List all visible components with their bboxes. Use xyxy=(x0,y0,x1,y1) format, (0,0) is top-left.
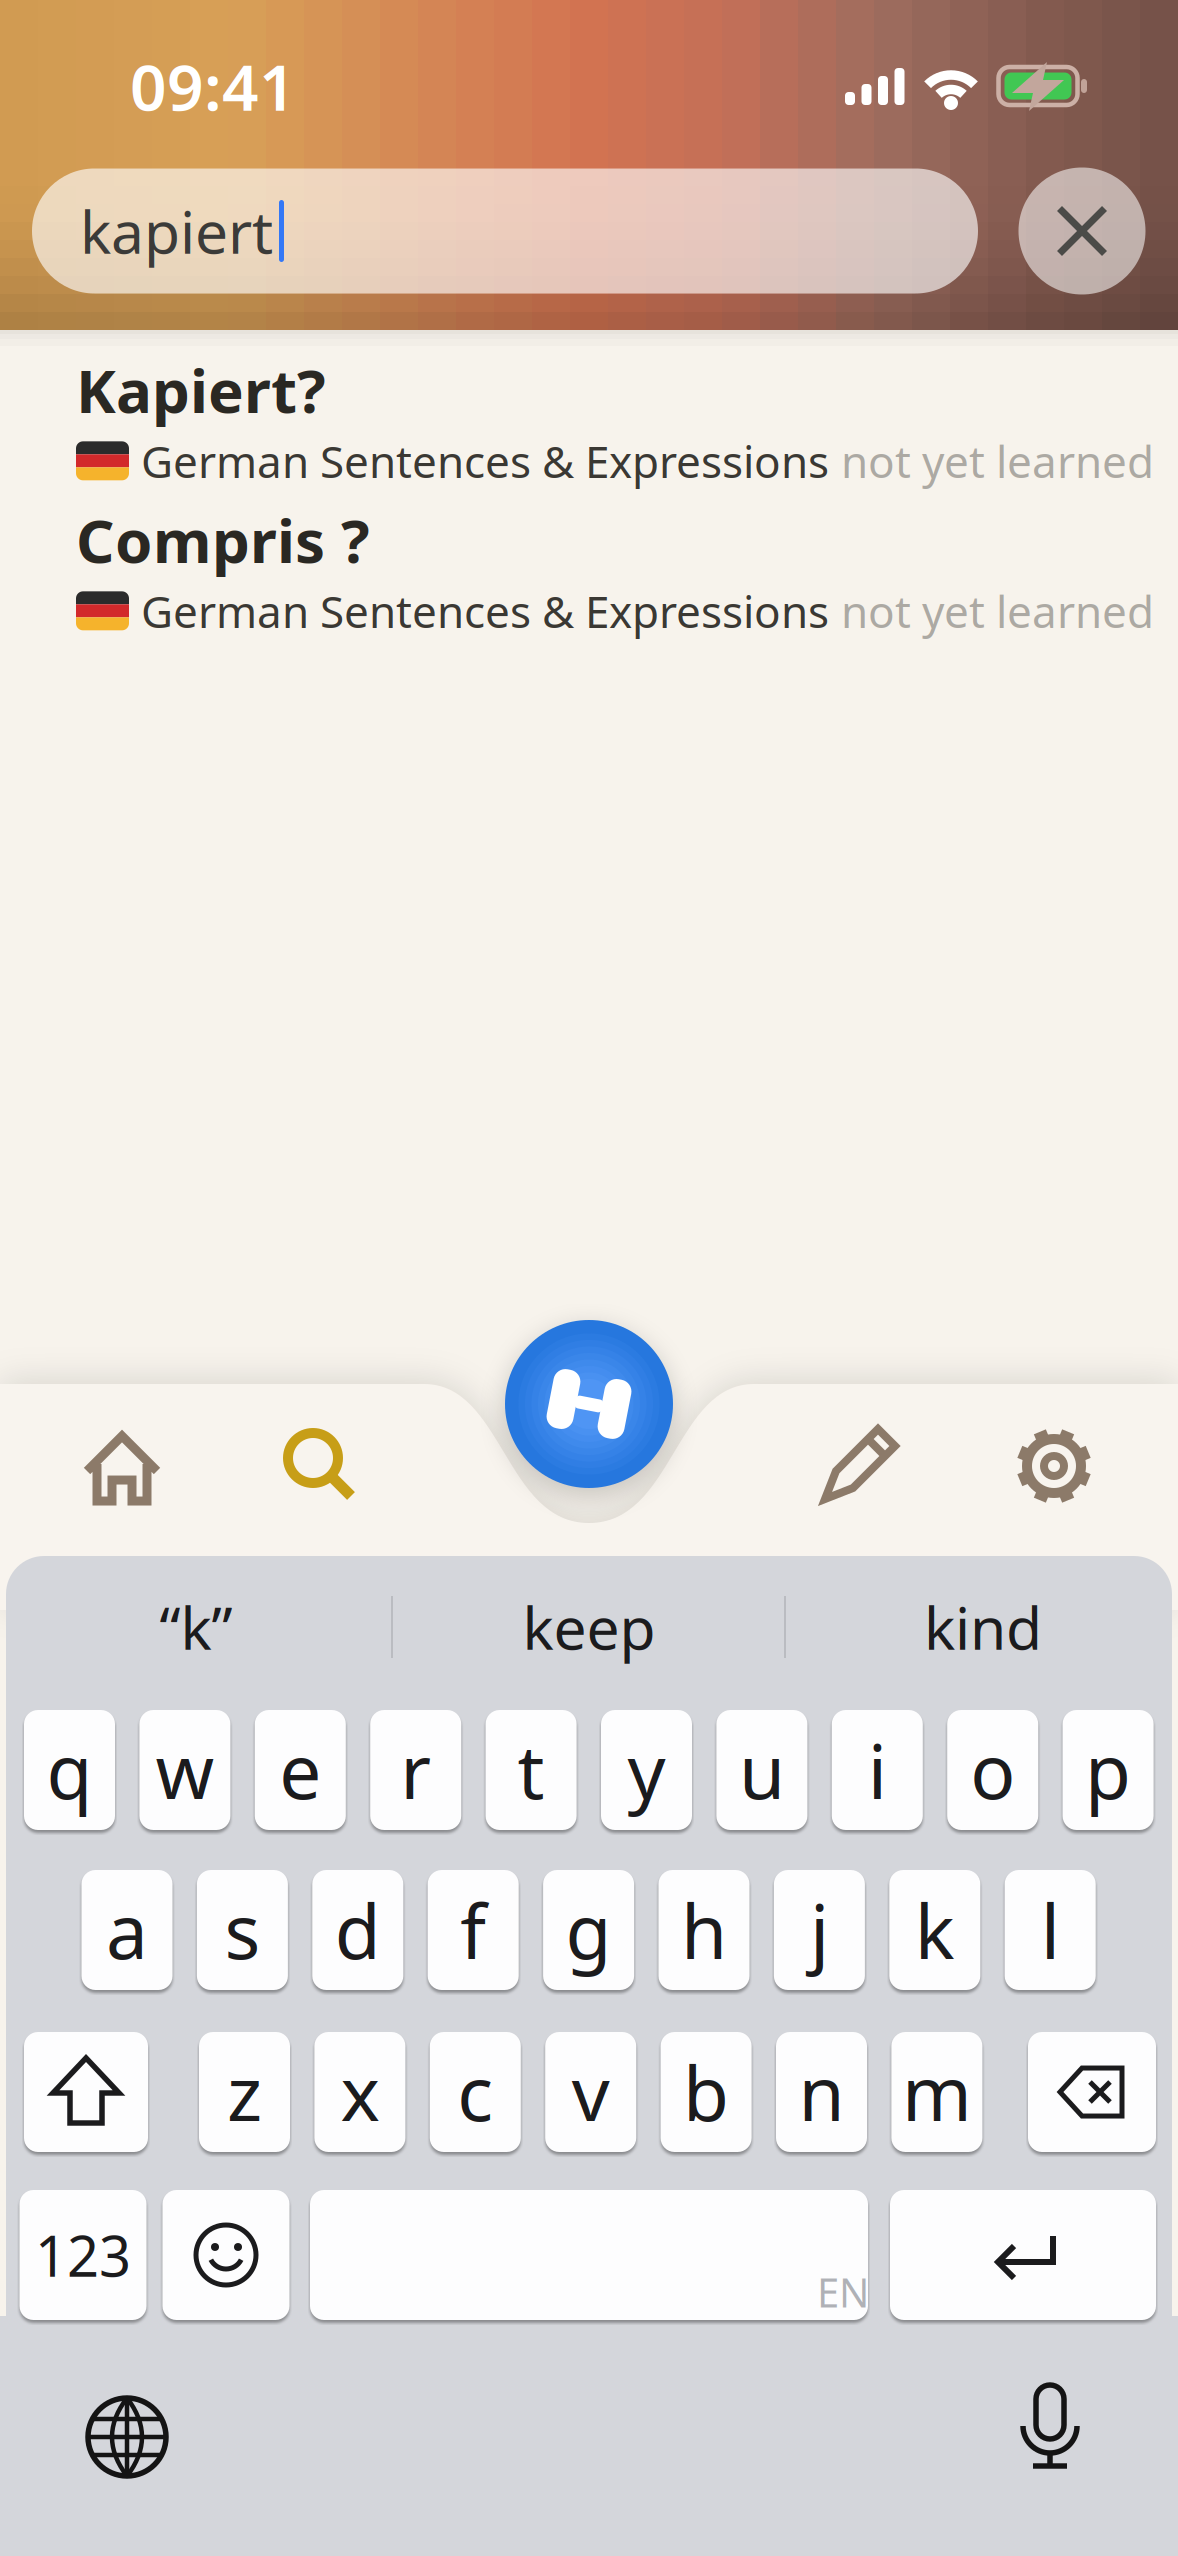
button[interactable] xyxy=(162,2190,289,2320)
staticText: g xyxy=(566,1880,612,1980)
button[interactable]: g xyxy=(543,1870,634,1990)
staticText: o xyxy=(970,1720,1015,1820)
staticText: f xyxy=(460,1880,486,1980)
button[interactable] xyxy=(24,2032,148,2152)
button[interactable]: a xyxy=(81,1870,172,1990)
button[interactable]: p xyxy=(1063,1710,1154,1830)
button[interactable]: k xyxy=(889,1870,980,1990)
staticText: x xyxy=(340,2042,379,2142)
staticText: keep xyxy=(522,1588,655,1666)
staticText: b xyxy=(683,2042,729,2142)
staticText: s xyxy=(224,1880,260,1980)
button[interactable]: y xyxy=(601,1710,692,1830)
button[interactable]: i xyxy=(832,1710,923,1830)
staticText: k xyxy=(915,1880,955,1980)
staticText: Compris ? xyxy=(76,500,370,580)
button[interactable]: Compris ? xyxy=(0,500,1178,640)
staticText: y xyxy=(627,1720,665,1820)
staticText: c xyxy=(457,2042,493,2142)
button[interactable] xyxy=(1028,2032,1156,2152)
staticText: “k” xyxy=(159,1588,232,1666)
staticText: r xyxy=(400,1720,431,1820)
staticText: j xyxy=(810,1880,829,1980)
button[interactable] xyxy=(243,1407,383,1527)
staticText: not yet learned xyxy=(841,582,1154,640)
button[interactable]: t xyxy=(486,1710,577,1830)
staticText: z xyxy=(227,2042,262,2142)
button[interactable]: o xyxy=(947,1710,1038,1830)
staticText: d xyxy=(335,1880,381,1980)
staticText: not yet learned xyxy=(841,432,1154,490)
staticText: kind xyxy=(924,1588,1042,1666)
button[interactable]: r xyxy=(370,1710,461,1830)
button[interactable] xyxy=(1018,167,1145,294)
button[interactable] xyxy=(32,168,978,293)
staticText: n xyxy=(798,2042,844,2142)
button[interactable] xyxy=(890,2190,1156,2320)
staticText: 09:41 xyxy=(130,43,296,128)
staticText: German Sentences & Expressions xyxy=(141,582,829,640)
staticText: t xyxy=(518,1720,545,1820)
staticText: u xyxy=(739,1720,785,1820)
staticText: i xyxy=(868,1720,887,1820)
staticText: w xyxy=(155,1720,214,1820)
button[interactable]: x xyxy=(314,2032,405,2152)
staticText: q xyxy=(46,1720,92,1820)
button[interactable] xyxy=(52,1407,192,1527)
button[interactable]: 123 xyxy=(19,2190,146,2320)
button[interactable] xyxy=(505,1320,673,1488)
button[interactable]: z xyxy=(199,2032,290,2152)
button[interactable]: “k” xyxy=(16,1587,376,1667)
button[interactable]: f xyxy=(428,1870,519,1990)
staticText: 123 xyxy=(35,2218,131,2292)
button[interactable]: v xyxy=(545,2032,636,2152)
button[interactable] xyxy=(995,2375,1105,2485)
button[interactable]: keep xyxy=(409,1587,769,1667)
button[interactable]: h xyxy=(658,1870,749,1990)
button[interactable]: c xyxy=(430,2032,521,2152)
button[interactable]: u xyxy=(716,1710,807,1830)
staticText: l xyxy=(1041,1880,1060,1980)
staticText: h xyxy=(681,1880,727,1980)
button[interactable]: d xyxy=(312,1870,403,1990)
button[interactable]: Kapiert? xyxy=(0,350,1178,490)
button[interactable]: j xyxy=(774,1870,865,1990)
button[interactable]: n xyxy=(776,2032,867,2152)
button[interactable]: e xyxy=(255,1710,346,1830)
button[interactable] xyxy=(984,1407,1124,1527)
button[interactable]: w xyxy=(139,1710,230,1830)
staticText: German Sentences & Expressions xyxy=(141,432,829,490)
staticText: v xyxy=(572,2042,610,2142)
button[interactable]: b xyxy=(661,2032,752,2152)
button[interactable]: q xyxy=(24,1710,115,1830)
button[interactable] xyxy=(72,2382,182,2492)
button[interactable]: kind xyxy=(803,1587,1163,1667)
staticText: kapiert xyxy=(80,192,273,270)
button[interactable]: l xyxy=(1005,1870,1096,1990)
button[interactable] xyxy=(310,2190,868,2320)
staticText: EN xyxy=(817,2265,869,2318)
button[interactable] xyxy=(787,1407,927,1527)
staticText: a xyxy=(106,1880,148,1980)
staticText: p xyxy=(1085,1720,1131,1820)
staticText: m xyxy=(902,2042,972,2142)
staticText: Kapiert? xyxy=(76,350,326,430)
button[interactable]: s xyxy=(197,1870,288,1990)
button[interactable]: m xyxy=(891,2032,982,2152)
staticText: e xyxy=(279,1720,321,1820)
